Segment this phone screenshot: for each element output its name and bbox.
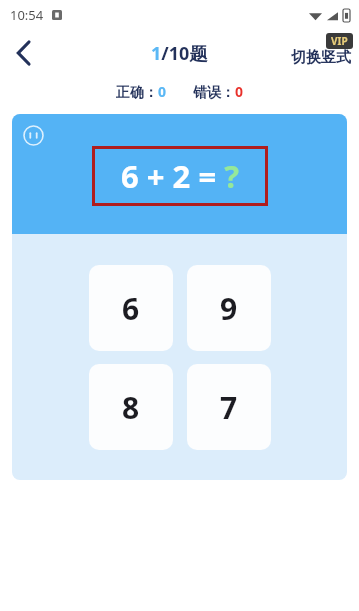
button[interactable]: 6: [89, 265, 173, 351]
staticText: 10:54: [10, 6, 44, 24]
staticText: 9: [220, 288, 238, 329]
staticText: VIP: [331, 34, 348, 48]
staticText: 正确：0: [116, 82, 167, 101]
staticText: 8: [122, 387, 140, 428]
staticText: 6: [122, 288, 140, 329]
button[interactable]: 9: [187, 265, 271, 351]
button[interactable]: 7: [187, 364, 271, 450]
staticText: 切换竖式: [291, 48, 351, 67]
staticText: 1/10题: [151, 41, 208, 66]
button[interactable]: Pause: [20, 122, 46, 148]
staticText: 错误：0: [193, 82, 244, 101]
button[interactable]: 切换竖式: [291, 40, 351, 67]
staticText: 6 + 2 = ?: [121, 155, 239, 197]
button[interactable]: 8: [89, 364, 173, 450]
staticText: 7: [220, 387, 238, 428]
button[interactable]: Back: [0, 30, 46, 76]
